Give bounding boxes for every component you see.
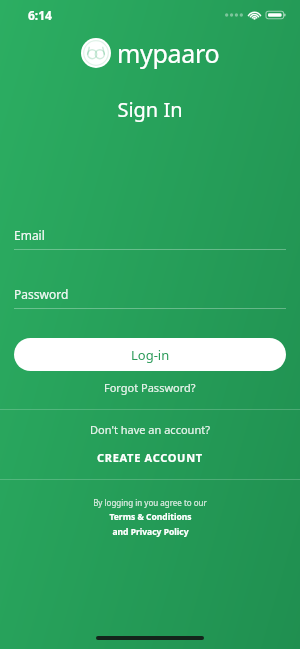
button[interactable]: Email [0, 227, 300, 250]
staticText: and Privacy Policy [112, 526, 189, 538]
staticText: Don't have an account? [0, 422, 300, 437]
staticText: Sign In [0, 96, 300, 123]
button[interactable]: CREATE ACCOUNT [87, 448, 213, 467]
button[interactable]: Password [0, 286, 300, 309]
staticText: CREATE ACCOUNT [97, 450, 203, 465]
staticText: mypaaro [117, 36, 220, 70]
staticText: Password [14, 286, 69, 302]
button[interactable]: Log-in [14, 338, 286, 371]
staticText: By logging in you agree to our [0, 497, 300, 508]
staticText: Email [14, 227, 45, 243]
button[interactable]: and Privacy Policy [112, 526, 189, 538]
staticText: Forgot Password? [104, 380, 196, 395]
staticText: Log-in [131, 346, 170, 364]
staticText: Terms & Conditions [109, 511, 192, 523]
staticText: 6:14 [28, 7, 52, 23]
button[interactable]: Terms & Conditions [109, 511, 192, 523]
button[interactable]: Forgot Password? [96, 378, 204, 397]
